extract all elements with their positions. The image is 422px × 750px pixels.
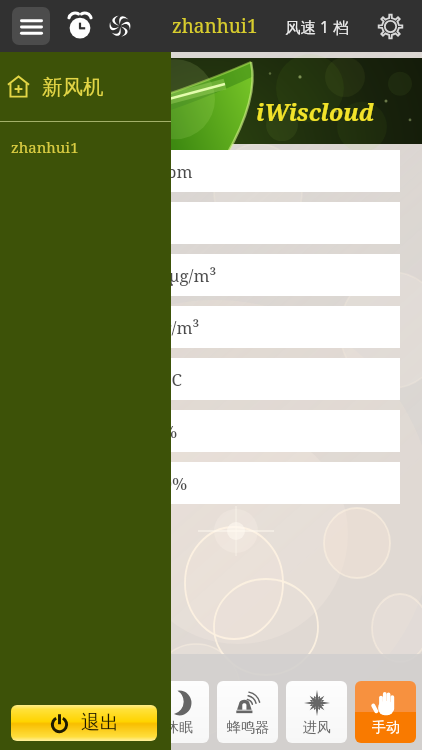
staticText: 48% xyxy=(143,420,178,443)
button[interactable]: 温度 xyxy=(0,358,400,400)
button[interactable]: 手动 xyxy=(355,681,416,743)
button[interactable]: Open navigation menu xyxy=(12,7,50,45)
button[interactable]: PM2.5 xyxy=(0,254,400,296)
button[interactable]: 蜂鸣器 xyxy=(217,681,278,743)
staticText: 20µg/m³ xyxy=(133,316,200,339)
staticText: 22.5°C xyxy=(132,368,182,391)
button[interactable]: zhanhui1 xyxy=(11,122,171,172)
staticText: 蜂鸣器 xyxy=(227,719,269,737)
button[interactable]: Timer xyxy=(64,10,96,42)
staticText: 新风机 xyxy=(42,74,104,100)
staticText: 520ppm xyxy=(127,160,193,183)
staticText: 13µg/m³ xyxy=(150,264,217,287)
button[interactable]: Settings xyxy=(368,4,412,48)
button[interactable]: PM10 xyxy=(0,306,400,348)
staticText: 进风 xyxy=(303,719,331,737)
button[interactable]: 空气质量 xyxy=(0,202,400,244)
staticText: iWiscloud xyxy=(256,96,374,127)
staticText: 退出 xyxy=(81,711,119,735)
staticText: 休眠 xyxy=(165,719,193,737)
staticText: zhanhui1 xyxy=(172,13,258,39)
button[interactable]: 二氧化碳 xyxy=(0,150,400,192)
button[interactable]: 湿度 xyxy=(0,410,400,452)
staticText: 90% xyxy=(153,472,188,495)
button[interactable]: 休眠 xyxy=(148,681,209,743)
button[interactable]: 滤网寿命 xyxy=(0,462,400,504)
staticText: 手动 xyxy=(372,719,400,737)
staticText: 风速 1 档 xyxy=(285,16,349,37)
button[interactable]: 新风机 xyxy=(7,52,171,121)
button[interactable]: 进风 xyxy=(286,681,347,743)
button[interactable]: 退出 xyxy=(11,705,157,741)
button[interactable]: Fan speed xyxy=(104,10,136,42)
staticText: zhanhui1 xyxy=(11,137,79,157)
